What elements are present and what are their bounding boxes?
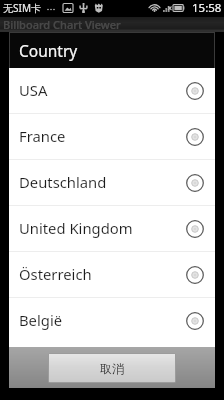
button[interactable]: USA [9, 68, 215, 113]
other: Select United Kingdom [186, 220, 204, 238]
staticText: Search Option [76, 40, 143, 53]
button[interactable]: United Kingdom [9, 206, 215, 251]
button[interactable]: België [9, 298, 215, 343]
other: Select België [186, 312, 204, 330]
button[interactable]: 取消 [49, 354, 175, 382]
staticText: Country [19, 40, 78, 61]
staticText: 15:58 [192, 0, 222, 15]
staticText: Österreich [19, 264, 186, 284]
other: Select USA [186, 82, 204, 100]
staticText: USA [19, 80, 186, 100]
staticText: 取消 [100, 361, 124, 376]
button[interactable]: Österreich [9, 252, 215, 297]
other: Select Deutschland [186, 174, 204, 192]
staticText: 无SIM卡 [3, 1, 41, 15]
staticText: Billboard Chart Viewer [3, 17, 121, 31]
other: Select France [186, 128, 204, 146]
staticText: United Kingdom [19, 218, 186, 238]
staticText: Deutschland [19, 172, 186, 192]
other: Select Österreich [186, 266, 204, 284]
button[interactable]: Deutschland [9, 160, 215, 205]
staticText: France [19, 126, 186, 146]
button[interactable]: France [9, 114, 215, 159]
staticText: België [19, 310, 186, 330]
